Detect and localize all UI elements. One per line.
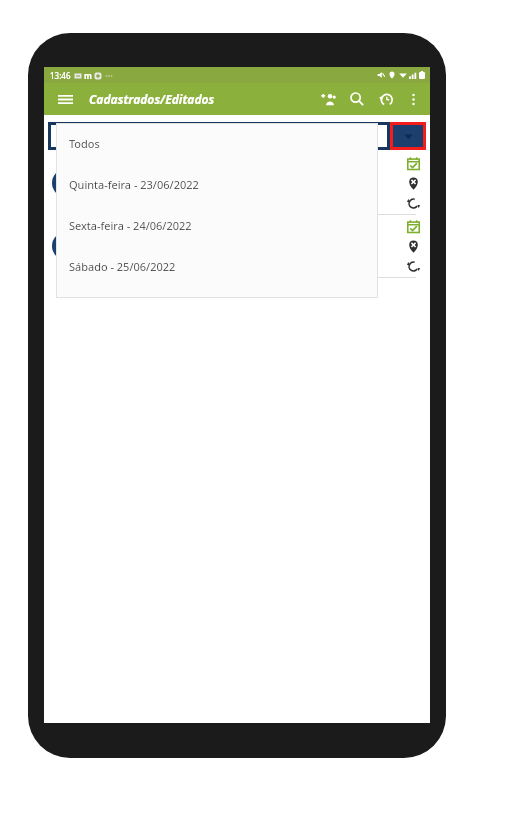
button[interactable]: Sync <box>405 258 422 275</box>
staticText: Cadastrados/Editados <box>89 91 215 107</box>
button[interactable]: Location off <box>405 238 422 255</box>
button[interactable]: Search <box>344 86 370 112</box>
staticText: Sexta-feira - 24/06/2022 <box>69 218 192 233</box>
button[interactable]: History <box>373 86 399 112</box>
button[interactable]: Schedule <box>405 218 422 235</box>
staticText: Sábado - 25/06/2022 <box>69 259 176 274</box>
button[interactable]: Location off <box>405 175 422 192</box>
button[interactable]: 08.832.000/0001-60 <box>44 215 430 277</box>
button[interactable]: Menu <box>52 86 78 112</box>
button[interactable]: Todos <box>56 123 378 164</box>
staticText: m <box>84 70 92 81</box>
staticText: Todos <box>69 136 100 151</box>
button[interactable]: Sábado - 25/06/2022 <box>56 246 378 287</box>
button[interactable]: More options <box>401 87 425 111</box>
button[interactable]: Add person <box>315 86 341 112</box>
staticText: 13:46 <box>50 70 71 81</box>
button[interactable]: Schedule <box>44 152 430 214</box>
button[interactable]: Quinta-feira - 23/06/2022 <box>56 164 378 205</box>
button[interactable]: Sexta-feira - 24/06/2022 <box>56 205 378 246</box>
button[interactable]: Schedule <box>405 155 422 172</box>
button[interactable]: Select date filter <box>48 121 426 150</box>
staticText: Quinta-feira - 23/06/2022 <box>69 177 199 192</box>
staticText: CANDIDO MENDES - Maranhão <box>88 254 227 267</box>
button[interactable]: Sync <box>405 195 422 212</box>
